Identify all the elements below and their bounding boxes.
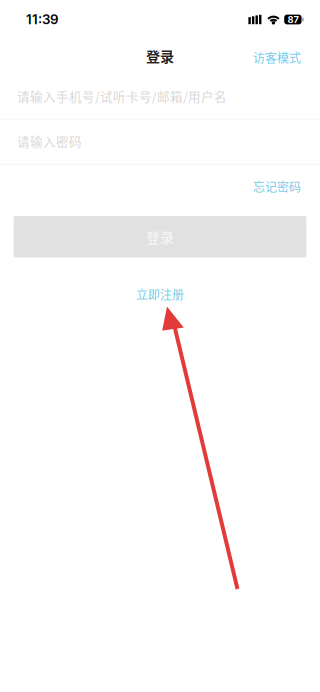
staticText: 访客模式 xyxy=(253,49,301,66)
staticText: 登录 xyxy=(146,46,174,66)
staticText: 请输入手机号/试听卡号/邮箱/用户名 xyxy=(17,87,227,105)
button[interactable]: 忘记密码 xyxy=(244,167,310,200)
staticText: 立即注册 xyxy=(136,285,184,303)
staticText: 忘记密码 xyxy=(253,178,301,195)
button[interactable]: 立即注册 xyxy=(126,279,194,309)
staticText: 登录 xyxy=(146,227,174,247)
staticText: 87 xyxy=(287,14,298,25)
staticText: 11:39 xyxy=(26,11,59,27)
button[interactable]: 访客模式 xyxy=(244,41,310,74)
staticText: 请输入密码 xyxy=(17,132,82,150)
